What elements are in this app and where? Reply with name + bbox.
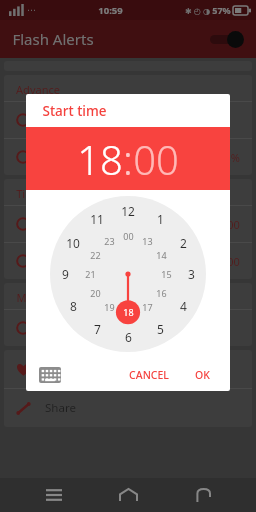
staticText: 17	[142, 301, 153, 313]
staticText: 14	[156, 249, 167, 261]
staticText: 00	[123, 230, 134, 242]
button[interactable]: 15	[156, 264, 176, 284]
button[interactable]: 21	[80, 264, 100, 284]
button[interactable]: 12	[117, 200, 139, 222]
staticText: ⋯	[27, 5, 36, 15]
button[interactable]: 2	[172, 232, 194, 254]
button[interactable]: 11	[86, 208, 108, 230]
staticText: Start	[44, 217, 69, 232]
staticText: ✱ ◴ ◑	[185, 5, 210, 16]
button[interactable]: 14	[151, 245, 171, 265]
staticText: :	[123, 132, 133, 186]
staticText: CANCEL	[129, 368, 169, 382]
staticText: 19	[104, 301, 115, 313]
button[interactable]: 4	[172, 295, 194, 317]
staticText: Share	[45, 400, 76, 416]
staticText: 18	[123, 306, 134, 318]
button[interactable]: 3	[180, 263, 202, 285]
staticText: 21	[85, 268, 96, 280]
button[interactable]: Recent apps	[33, 478, 75, 512]
button[interactable]: 5	[149, 318, 171, 340]
button[interactable]: Start	[4, 206, 252, 242]
staticText: 11	[90, 211, 104, 227]
staticText: OK	[195, 368, 210, 382]
button[interactable]: 13	[137, 231, 157, 251]
button[interactable]: CANCEL	[122, 363, 176, 387]
button[interactable]: 23	[99, 231, 119, 251]
staticText: 2	[180, 235, 187, 251]
button[interactable]: Rate this app	[4, 350, 252, 388]
staticText: Start time	[42, 102, 107, 120]
staticText: 00	[227, 254, 240, 269]
staticText: Battery	[44, 150, 82, 165]
button[interactable]: 18	[118, 302, 138, 322]
staticText: 7	[94, 321, 101, 337]
staticText: 57%	[212, 4, 231, 16]
button[interactable]: 6	[117, 326, 139, 348]
button[interactable]: 00	[133, 132, 179, 186]
button[interactable]: 8	[62, 295, 84, 317]
staticText: 5	[157, 321, 164, 337]
staticText: 10:59	[98, 4, 123, 17]
staticText: 23	[104, 235, 115, 247]
staticText: Flash	[44, 113, 71, 128]
button[interactable]: Battery	[4, 139, 252, 175]
button[interactable]: Switch to keyboard input	[39, 367, 61, 383]
staticText: More	[16, 290, 44, 305]
button[interactable]: 19	[99, 297, 119, 317]
button[interactable]: List	[4, 310, 252, 346]
staticText: 13	[142, 235, 153, 247]
staticText: Rate this app	[45, 361, 116, 377]
staticText: 16	[156, 287, 167, 299]
staticText: 9	[62, 266, 69, 282]
button[interactable]: 16	[151, 283, 171, 303]
staticText: 6	[125, 329, 132, 345]
button[interactable]: End	[4, 243, 252, 279]
staticText: 8	[70, 298, 77, 314]
button[interactable]: 22	[85, 245, 105, 265]
staticText: 20	[90, 287, 101, 299]
staticText: 15	[161, 268, 172, 280]
button[interactable]: Toggle flash alerts	[210, 30, 244, 48]
button[interactable]: Share	[4, 389, 252, 427]
button[interactable]: 20	[85, 283, 105, 303]
button[interactable]: 00	[118, 226, 138, 246]
button[interactable]: 9	[54, 263, 76, 285]
staticText: Flash Alerts	[12, 29, 94, 49]
button[interactable]: Back	[182, 478, 224, 512]
staticText: 18	[77, 132, 123, 186]
staticText: 3	[188, 266, 195, 282]
button[interactable]: Home	[107, 478, 149, 512]
staticText: 00	[227, 217, 240, 232]
button[interactable]: 18	[77, 132, 123, 186]
button[interactable]: 17	[137, 297, 157, 317]
button[interactable]: 1	[149, 208, 171, 230]
staticText: 4	[180, 298, 187, 314]
staticText: 00	[133, 132, 179, 186]
staticText: 22	[90, 249, 101, 261]
button[interactable]: 10	[62, 232, 84, 254]
staticText: End	[44, 254, 64, 269]
staticText: 10	[66, 235, 80, 251]
staticText: 1	[157, 211, 164, 227]
staticText: 12	[121, 203, 135, 219]
staticText: Advance	[16, 82, 60, 97]
staticText: 15%	[218, 150, 240, 165]
button[interactable]: OK	[188, 363, 217, 387]
button[interactable]: 7	[86, 318, 108, 340]
staticText: Timing	[16, 186, 52, 201]
button[interactable]: Flash	[4, 102, 252, 138]
